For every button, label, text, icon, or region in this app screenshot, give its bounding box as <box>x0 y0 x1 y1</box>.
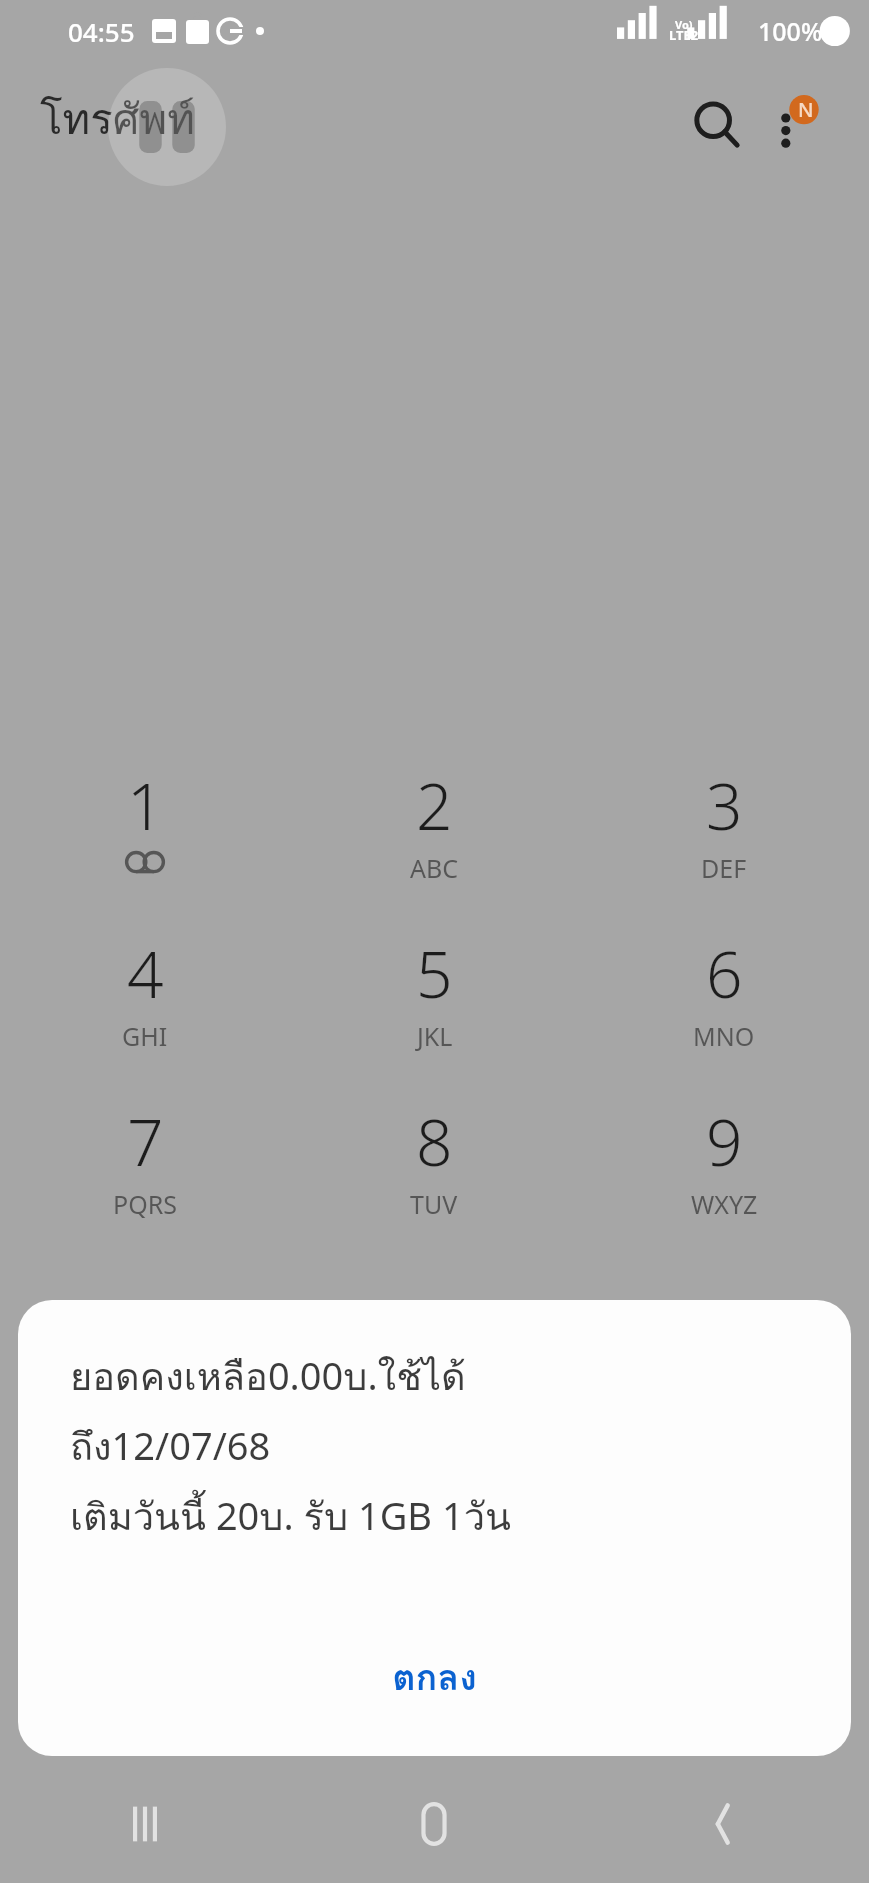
staticText: 6 <box>706 930 743 1017</box>
staticText: เติมวันนี้ 20บ. รับ 1GB 1วัน <box>70 1486 511 1546</box>
button[interactable]: Recents <box>0 1765 289 1883</box>
button[interactable]: 8 <box>289 1098 579 1266</box>
button[interactable]: Search <box>662 70 772 180</box>
staticText: WXYZ <box>691 1187 758 1221</box>
staticText: 4 <box>127 930 164 1017</box>
button[interactable]: 4 <box>0 930 289 1098</box>
button[interactable]: 1 <box>0 762 289 930</box>
button[interactable]: 6 <box>579 930 869 1098</box>
staticText: DEF <box>701 851 747 885</box>
staticText: 7 <box>127 1098 164 1185</box>
staticText: N <box>798 96 814 123</box>
button[interactable]: Home <box>289 1765 579 1883</box>
staticText: 5 <box>416 930 453 1017</box>
staticText: ตกลง <box>392 1649 477 1706</box>
button[interactable]: ตกลง <box>18 1626 851 1756</box>
staticText: ยอดคงเหลือ0.00บ.ใช้ได้ <box>70 1346 466 1406</box>
staticText: Vo) <box>675 17 693 32</box>
staticText: PQRS <box>113 1187 177 1221</box>
button[interactable]: 3 <box>579 762 869 930</box>
staticText: โทรศัพท์ <box>40 86 195 153</box>
staticText: JKL <box>417 1019 453 1053</box>
button[interactable]: 7 <box>0 1098 289 1266</box>
staticText: TUV <box>410 1187 458 1221</box>
staticText: ABC <box>410 851 459 885</box>
staticText: ถึง12/07/68 <box>70 1416 271 1476</box>
staticText: 04:55 <box>68 14 135 49</box>
staticText: 1 <box>127 762 164 849</box>
staticText: 2 <box>416 762 453 849</box>
staticText: 8 <box>416 1098 453 1185</box>
staticText: GHI <box>122 1019 168 1053</box>
button[interactable]: 5 <box>289 930 579 1098</box>
staticText: 100% <box>758 14 823 48</box>
button[interactable]: More options <box>742 70 852 180</box>
button[interactable]: 2 <box>289 762 579 930</box>
staticText: MNO <box>693 1019 755 1053</box>
staticText: 3 <box>706 762 743 849</box>
staticText: 9 <box>706 1098 743 1185</box>
button[interactable]: 9 <box>579 1098 869 1266</box>
staticText: LTE2 <box>669 26 699 44</box>
button[interactable]: Back <box>579 1765 869 1883</box>
